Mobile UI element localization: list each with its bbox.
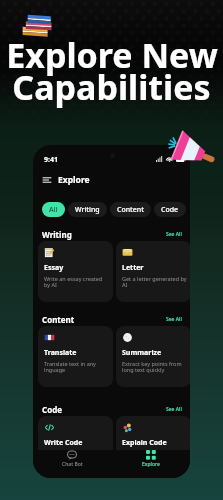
staticText: Letter — [122, 263, 144, 273]
staticText: Write Code — [44, 438, 83, 448]
button[interactable]: See All — [166, 316, 182, 323]
staticText: Code — [161, 205, 179, 215]
staticText: Explain Code — [122, 438, 167, 448]
button[interactable]: Translate — [38, 326, 113, 387]
button[interactable]: Summarize — [116, 326, 190, 387]
staticText: See All — [166, 231, 182, 238]
staticText: Content — [117, 205, 144, 215]
button[interactable]: All — [42, 202, 65, 217]
button[interactable]: See All — [166, 406, 182, 413]
button[interactable]: Explain Code — [116, 416, 190, 477]
button[interactable]: Write Code — [38, 416, 113, 477]
staticText: Summarize — [122, 348, 162, 358]
staticText: Extract key points from long text quickl… — [122, 360, 187, 374]
staticText: Capabilities — [12, 64, 211, 110]
staticText: Chat Bot — [62, 461, 83, 468]
staticText: Write an essay created by AI — [44, 275, 109, 289]
button[interactable]: Explore — [111, 448, 190, 470]
staticText: Code — [42, 404, 62, 415]
staticText: See All — [166, 406, 182, 413]
staticText: Get a letter generated by AI — [122, 275, 187, 289]
staticText: See All — [166, 316, 182, 323]
button[interactable]: Essay — [38, 241, 113, 302]
staticText: Explore — [142, 461, 160, 468]
staticText: 9:41 — [44, 155, 58, 165]
staticText: Explore New — [6, 32, 218, 78]
staticText: All — [49, 205, 58, 215]
staticText: Content — [42, 314, 75, 325]
button[interactable]: Chat Bot — [33, 448, 111, 470]
button[interactable]: Code — [154, 202, 186, 217]
staticText: Writing — [42, 229, 72, 240]
staticText: Essay — [44, 263, 64, 273]
staticText: Translate text in any lnguage — [44, 360, 109, 374]
staticText: Translate — [44, 348, 77, 358]
button[interactable]: Menu — [42, 175, 52, 185]
staticText: Writing — [75, 205, 100, 215]
button[interactable]: Writing — [68, 202, 107, 217]
button[interactable]: Letter — [116, 241, 190, 302]
staticText: Explore — [58, 174, 90, 186]
button[interactable]: See All — [166, 231, 182, 238]
button[interactable]: Content — [110, 202, 151, 217]
